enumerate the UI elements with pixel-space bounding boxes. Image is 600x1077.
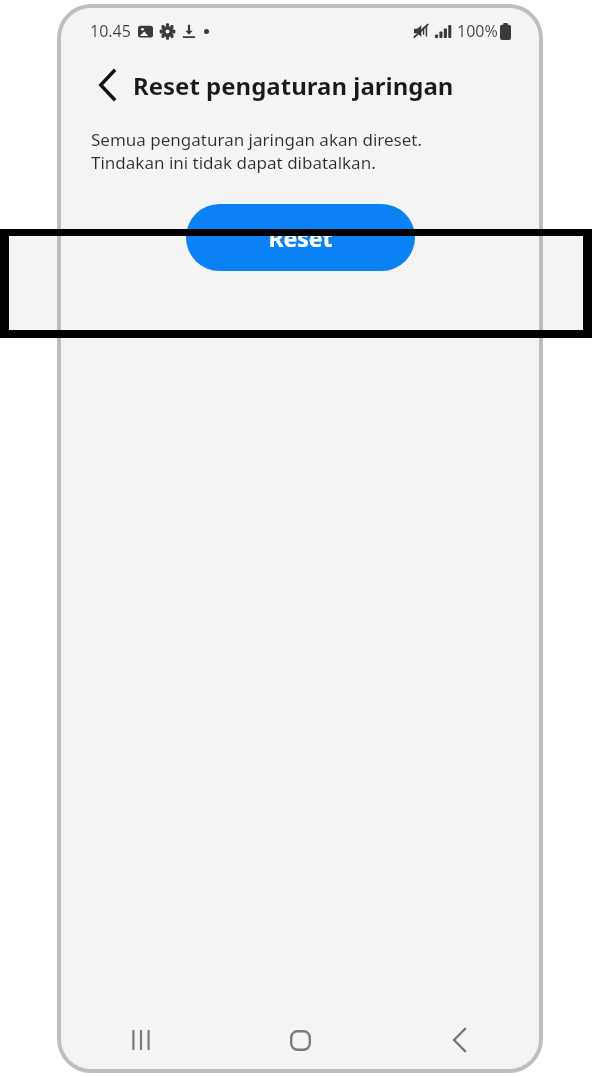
button[interactable]: Back xyxy=(380,1011,539,1069)
staticText: 10.45 xyxy=(90,20,131,42)
button[interactable]: Reset xyxy=(186,204,415,271)
staticText: Tindakan ini tidak dapat dibatalkan. xyxy=(91,151,376,174)
button[interactable]: Back xyxy=(87,65,127,105)
staticText: Reset xyxy=(268,222,333,253)
staticText: 100% xyxy=(457,20,498,42)
button[interactable]: Home xyxy=(221,1011,380,1069)
button[interactable]: Recents xyxy=(61,1011,221,1069)
staticText: Semua pengaturan jaringan akan direset. xyxy=(91,128,422,151)
staticText: Reset pengaturan jaringan xyxy=(133,69,454,102)
